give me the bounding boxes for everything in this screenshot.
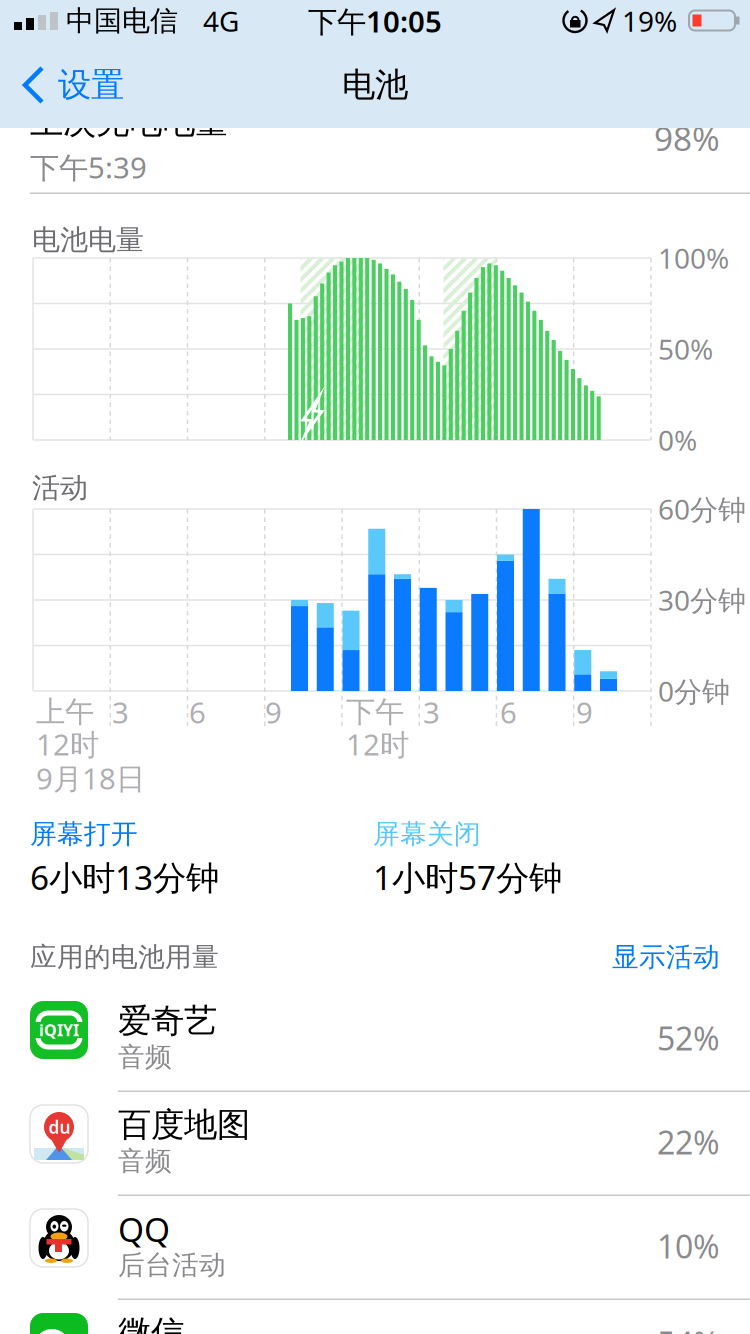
staticText: 上次充电电量 [30,101,228,142]
staticText: 设置 [58,64,124,105]
staticText: 下午10:05 [308,1,442,40]
staticText: 9 [265,692,282,731]
staticText: 12时 [36,724,99,763]
staticText: 50% [658,330,713,368]
staticText: 3 [423,692,440,731]
staticText: 爱奇艺 [118,1000,217,1041]
staticText: 60分钟 [658,490,746,528]
staticText: 电池电量 [32,223,144,257]
staticText: 后台活动 [118,1249,226,1281]
staticText: 4G [203,2,239,40]
staticText: 中国电信 [66,4,178,38]
staticText: 音频 [118,1145,172,1177]
staticText: 22% [657,1121,720,1163]
staticText: 9月18日 [36,758,145,797]
staticText: 应用的电池用量 [30,941,219,973]
staticText: 98% [654,116,720,160]
staticText: 6小时13分钟 [30,855,219,899]
button[interactable]: du [0,1092,750,1196]
staticText: du [48,1115,70,1138]
staticText: 12时 [346,724,409,763]
staticText: 1小时57分钟 [373,855,562,899]
staticText: 30分钟 [658,581,746,619]
staticText: 上午 [36,694,94,730]
staticText: 屏幕关闭 [373,818,481,850]
staticText: 百度地图 [118,1104,250,1145]
staticText: 屏幕打开 [30,818,138,850]
button[interactable]: 显示活动 [0,0,750,1334]
staticText: 活动 [32,471,88,505]
staticText: 10% [657,1225,720,1267]
staticText: 19% [622,2,677,40]
staticText: 6 [189,692,206,731]
staticText: 显示活动 [612,941,720,973]
staticText: QQ [118,1207,170,1251]
button[interactable]: 设置 [18,63,124,107]
staticText: 0% [658,421,697,459]
staticText: 下午 [346,694,404,730]
staticText: 6 [500,692,517,731]
staticText: 微信 [118,1312,184,1334]
staticText: 9 [576,692,593,731]
button[interactable]: 微信 [0,1300,750,1334]
staticText: 54% [657,1322,720,1334]
staticText: 3 [112,692,129,731]
button[interactable]: QQ [0,1196,750,1300]
staticText: 100% [658,239,729,277]
staticText: 下午5:39 [30,147,147,186]
staticText: 52% [657,1017,720,1059]
staticText: iQIYI [39,1019,79,1041]
button[interactable]: iQIYI [0,988,750,1092]
staticText: 0分钟 [658,672,730,710]
staticText: 音频 [118,1041,172,1073]
staticText: 电池 [342,64,408,105]
